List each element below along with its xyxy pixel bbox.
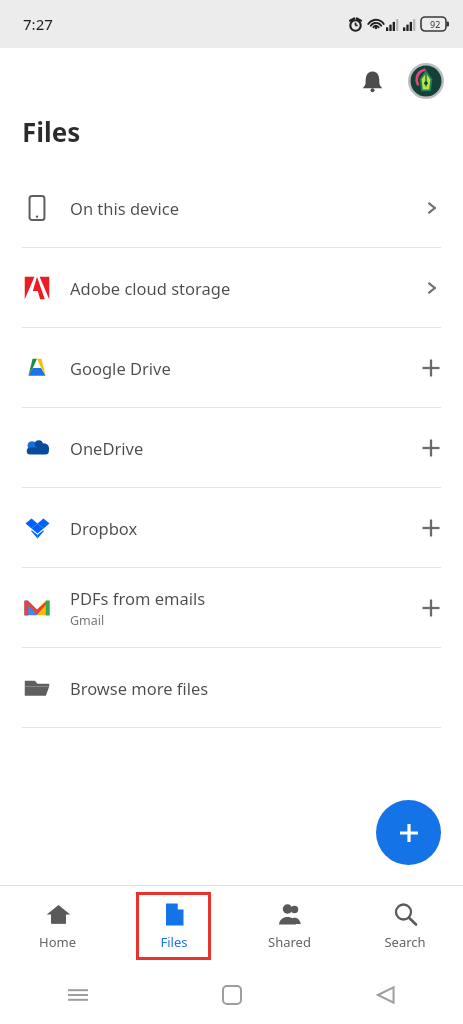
button[interactable]: Home <box>0 886 115 965</box>
button[interactable]: Browse more files <box>0 648 463 727</box>
staticText: Files <box>160 933 188 951</box>
button[interactable]: Search <box>347 886 463 965</box>
staticText: 92 <box>430 18 441 30</box>
button[interactable]: On this device <box>0 168 463 247</box>
button[interactable]: OneDrive <box>0 408 463 487</box>
staticText: Gmail <box>70 612 105 629</box>
button[interactable]: Google Drive <box>0 328 463 407</box>
staticText: Dropbox <box>70 517 138 539</box>
button[interactable]: Adobe cloud storage <box>0 248 463 327</box>
button[interactable]: Home <box>155 965 309 1024</box>
button[interactable]: Shared <box>231 886 347 965</box>
staticText: Home <box>39 933 76 951</box>
button[interactable]: Recents <box>0 965 155 1024</box>
button[interactable]: PDFs from emails <box>0 568 463 647</box>
button[interactable]: Files <box>139 895 208 957</box>
staticText: Shared <box>268 933 311 951</box>
button[interactable]: Dropbox <box>0 488 463 567</box>
staticText: Search <box>384 933 426 951</box>
button[interactable]: Back <box>309 965 463 1024</box>
staticText: Adobe cloud storage <box>70 277 231 299</box>
staticText: Files <box>22 114 81 149</box>
staticText: PDFs from emails <box>70 587 206 609</box>
staticText: On this device <box>70 197 179 219</box>
button[interactable]: Profile <box>407 62 445 100</box>
staticText: OneDrive <box>70 437 144 459</box>
staticText: Google Drive <box>70 357 171 379</box>
button[interactable]: Create new file <box>376 800 441 865</box>
button[interactable]: Notifications <box>350 59 394 103</box>
staticText: Browse more files <box>70 677 209 699</box>
staticText: 7:27 <box>23 14 53 34</box>
